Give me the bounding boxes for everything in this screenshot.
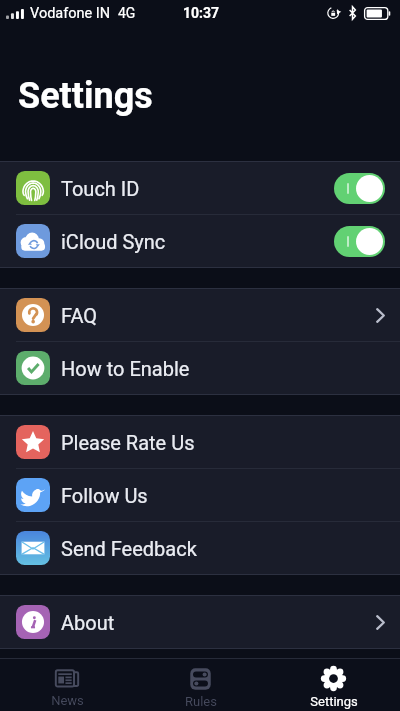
button[interactable]: Open	[367, 610, 385, 634]
staticText: Settings	[310, 694, 358, 709]
other: Rotation lock	[327, 6, 341, 20]
staticText: Vodafone IN	[30, 5, 111, 22]
staticText: About	[61, 611, 115, 634]
button[interactable]: Toggle	[334, 173, 385, 204]
staticText: Settings	[18, 75, 153, 117]
other: Bluetooth	[348, 6, 357, 20]
staticText: 10:37	[183, 5, 220, 21]
button[interactable]: Rules	[134, 659, 267, 711]
button[interactable]: Please Rate Us	[0, 416, 400, 468]
button[interactable]: Settings	[267, 659, 400, 711]
button[interactable]: iCloud Sync	[0, 215, 400, 267]
staticText: How to Enable	[61, 357, 190, 380]
staticText: Rules	[185, 694, 217, 709]
button[interactable]: About	[0, 596, 400, 648]
other: Battery	[364, 7, 391, 20]
staticText: 4G	[118, 5, 136, 21]
button[interactable]: Toggle	[334, 226, 385, 257]
button[interactable]: News	[0, 659, 134, 711]
staticText: Send Feedback	[61, 537, 197, 560]
button[interactable]: How to Enable	[0, 342, 400, 394]
staticText: Touch ID	[61, 177, 140, 200]
button[interactable]: Open	[367, 303, 385, 327]
staticText: Please Rate Us	[61, 431, 195, 454]
button[interactable]: Send Feedback	[0, 522, 400, 574]
staticText: News	[51, 693, 84, 708]
staticText: Follow Us	[61, 484, 148, 507]
button[interactable]: Touch ID	[0, 162, 400, 214]
button[interactable]: FAQ	[0, 289, 400, 341]
staticText: iCloud Sync	[61, 230, 166, 253]
staticText: FAQ	[61, 304, 98, 327]
button[interactable]: Follow Us	[0, 469, 400, 521]
